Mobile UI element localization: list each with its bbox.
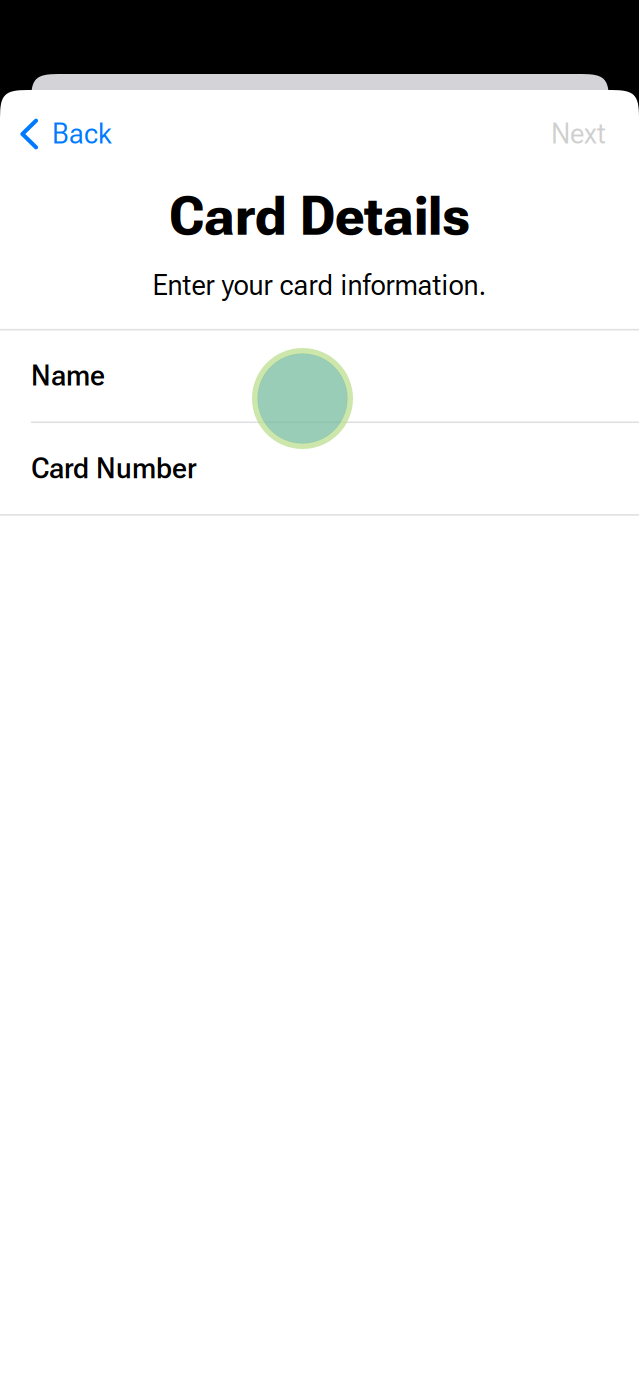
staticText: Card Number xyxy=(31,452,197,485)
button[interactable]: Name xyxy=(0,330,639,421)
staticText: Card Details xyxy=(169,184,470,248)
staticText: Back xyxy=(52,118,112,150)
button[interactable]: Next xyxy=(551,110,639,158)
staticText: Enter your card information. xyxy=(152,269,486,302)
button[interactable]: Back xyxy=(0,110,112,158)
staticText: Name xyxy=(31,360,105,392)
staticText: Next xyxy=(551,118,606,150)
button[interactable]: Card Number xyxy=(0,423,639,514)
